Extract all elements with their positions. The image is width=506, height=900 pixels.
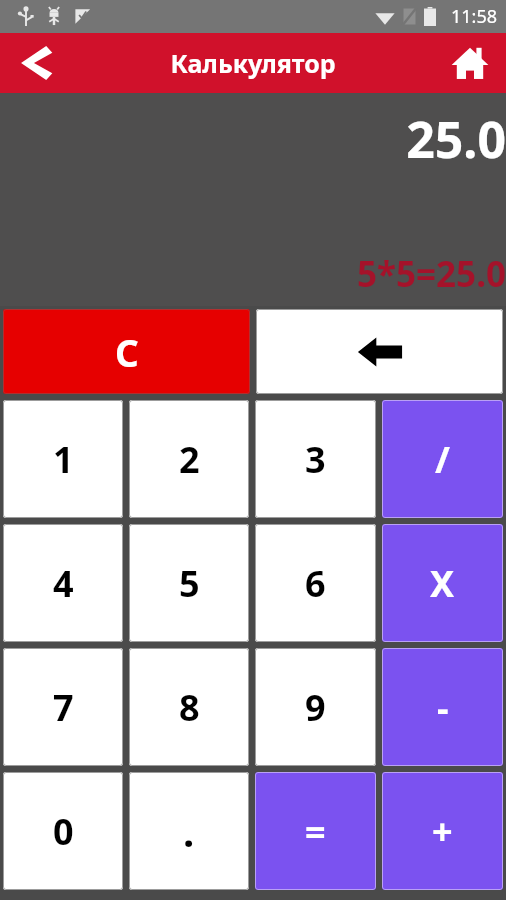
staticText: 1 — [53, 435, 74, 484]
button[interactable]: C — [3, 309, 250, 394]
button[interactable]: 1 — [3, 400, 123, 518]
button[interactable]: 6 — [255, 524, 376, 642]
staticText: + — [432, 807, 453, 856]
staticText: 7 — [53, 683, 74, 732]
button[interactable]: 8 — [129, 648, 249, 766]
staticText: - — [437, 683, 449, 732]
staticText: 25.0 — [406, 105, 506, 173]
staticText: Калькулятор — [170, 46, 336, 80]
staticText: 11:58 — [451, 4, 498, 29]
staticText: 5*5=25.0 — [357, 250, 506, 298]
staticText: 4 — [53, 559, 74, 608]
button[interactable]: + — [382, 772, 503, 890]
staticText: . — [183, 804, 195, 858]
button[interactable]: 0 — [3, 772, 123, 890]
button[interactable]: 2 — [129, 400, 249, 518]
staticText: 9 — [305, 683, 326, 732]
staticText: X — [430, 559, 455, 608]
staticText: 0 — [53, 807, 74, 856]
button[interactable]: Home — [434, 33, 506, 93]
button[interactable]: / — [382, 400, 503, 518]
staticText: 2 — [179, 435, 200, 484]
button[interactable]: Backspace — [256, 309, 503, 394]
button[interactable]: . — [129, 772, 249, 890]
button[interactable]: 9 — [255, 648, 376, 766]
staticText: 5 — [179, 559, 200, 608]
staticText: 8 — [179, 683, 200, 732]
staticText: = — [305, 807, 326, 856]
button[interactable]: - — [382, 648, 503, 766]
button[interactable]: Back — [0, 33, 72, 93]
button[interactable]: 3 — [255, 400, 376, 518]
staticText: / — [435, 435, 450, 484]
staticText: 3 — [305, 435, 326, 484]
staticText: 6 — [305, 559, 326, 608]
button[interactable]: 7 — [3, 648, 123, 766]
button[interactable]: 5 — [129, 524, 249, 642]
button[interactable]: = — [255, 772, 376, 890]
staticText: C — [115, 327, 139, 377]
button[interactable]: X — [382, 524, 503, 642]
button[interactable]: 4 — [3, 524, 123, 642]
